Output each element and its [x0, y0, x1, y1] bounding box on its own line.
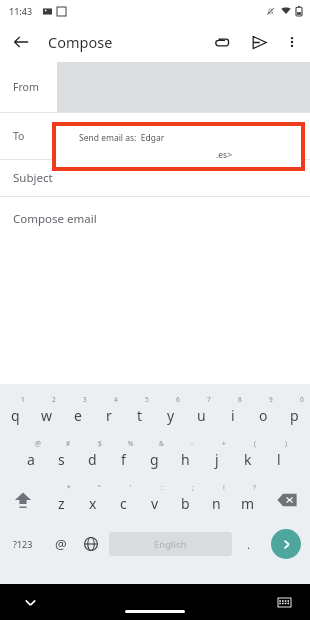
button[interactable]: 3	[62, 390, 93, 434]
staticText: )	[285, 439, 287, 448]
button[interactable]: 1	[0, 390, 31, 434]
staticText: %	[128, 439, 134, 448]
button[interactable]: ;	[170, 478, 201, 522]
button[interactable]: 4	[93, 390, 124, 434]
staticText: 5	[145, 395, 149, 404]
staticText: l	[277, 450, 281, 469]
button[interactable]: Compose email	[0, 197, 310, 267]
staticText: To	[13, 129, 25, 143]
staticText: y	[167, 406, 175, 425]
staticText: $	[98, 439, 102, 448]
staticText: Send email as: Edgar	[79, 132, 167, 144]
button[interactable]: 7	[186, 390, 217, 434]
staticText: r	[106, 406, 112, 425]
staticText: k	[244, 450, 252, 469]
staticText: (	[254, 439, 256, 448]
staticText: u	[197, 406, 206, 425]
staticText: f	[121, 450, 126, 469]
button[interactable]: "	[77, 478, 108, 522]
staticText: 4	[114, 395, 118, 404]
button[interactable]: 6	[155, 390, 186, 434]
button[interactable]: 8	[217, 390, 248, 434]
button[interactable]: .	[235, 522, 262, 566]
button[interactable]: %	[108, 434, 139, 478]
button[interactable]: Subject	[0, 160, 310, 196]
button[interactable]: To	[0, 113, 310, 159]
staticText: '	[130, 483, 132, 492]
button[interactable]: ?123	[0, 522, 46, 566]
staticText: &	[159, 439, 164, 448]
button[interactable]: @	[15, 434, 46, 478]
button[interactable]: English	[109, 532, 232, 556]
button[interactable]: $	[77, 434, 108, 478]
staticText: n	[212, 494, 221, 513]
staticText: 7	[207, 395, 211, 404]
button[interactable]: Attach file	[206, 27, 236, 57]
staticText: ;	[192, 483, 194, 492]
button[interactable]: )	[263, 434, 294, 478]
button[interactable]: Hide keyboard	[18, 590, 42, 614]
staticText: j	[215, 450, 219, 469]
button[interactable]: ?	[232, 478, 263, 522]
staticText: s	[58, 450, 65, 469]
staticText: q	[11, 406, 20, 425]
staticText: ?	[253, 483, 256, 492]
button[interactable]: Shift	[0, 478, 46, 522]
button[interactable]: Back	[6, 27, 36, 57]
staticText: .es>	[216, 149, 233, 161]
button[interactable]: *	[46, 478, 77, 522]
button[interactable]: (	[232, 434, 263, 478]
button[interactable]: +	[201, 434, 232, 478]
staticText: Compose	[48, 32, 113, 52]
staticText: g	[150, 450, 159, 469]
button[interactable]: Backspace	[263, 478, 310, 522]
button[interactable]: Switch keyboard	[272, 590, 296, 614]
button[interactable]: @	[46, 522, 76, 566]
staticText: 11:43	[9, 5, 33, 17]
button[interactable]: Change language	[76, 522, 106, 566]
staticText: @	[35, 439, 41, 448]
staticText: +	[222, 439, 226, 448]
staticText: *	[67, 483, 71, 492]
staticText: -	[191, 439, 194, 448]
button[interactable]: 0	[279, 390, 310, 434]
staticText: h	[181, 450, 190, 469]
staticText: t	[137, 406, 143, 425]
button[interactable]: !	[201, 478, 232, 522]
staticText: i	[231, 406, 235, 425]
staticText: Subject	[13, 170, 53, 186]
staticText: 0	[300, 395, 304, 404]
button[interactable]: From	[0, 62, 310, 112]
button[interactable]: 2	[31, 390, 62, 434]
staticText: From	[13, 80, 39, 94]
staticText: ?123	[13, 538, 33, 550]
button[interactable]: -	[170, 434, 201, 478]
staticText: e	[74, 406, 82, 425]
staticText: !	[223, 483, 225, 492]
button[interactable]: Enter	[262, 522, 310, 566]
staticText: z	[58, 494, 65, 513]
button[interactable]: Send	[244, 27, 274, 57]
button[interactable]: 9	[248, 390, 279, 434]
staticText: @	[55, 535, 67, 553]
staticText: .	[247, 537, 250, 552]
button[interactable]: &	[139, 434, 170, 478]
button[interactable]: #	[46, 434, 77, 478]
button[interactable]: 5	[124, 390, 155, 434]
button[interactable]: More options	[278, 28, 306, 56]
button[interactable]: '	[108, 478, 139, 522]
staticText: "	[98, 483, 101, 492]
button[interactable]: :	[139, 478, 170, 522]
staticText: o	[259, 406, 268, 425]
staticText: m	[241, 494, 255, 513]
staticText: v	[151, 494, 159, 513]
staticText: d	[88, 450, 97, 469]
staticText: b	[181, 494, 190, 513]
staticText: :	[161, 483, 163, 492]
staticText: English	[154, 538, 187, 551]
staticText: 3	[83, 395, 87, 404]
staticText: #	[66, 439, 71, 448]
staticText: 1	[21, 395, 25, 404]
staticText: x	[89, 494, 97, 513]
staticText: Compose email	[13, 211, 97, 227]
